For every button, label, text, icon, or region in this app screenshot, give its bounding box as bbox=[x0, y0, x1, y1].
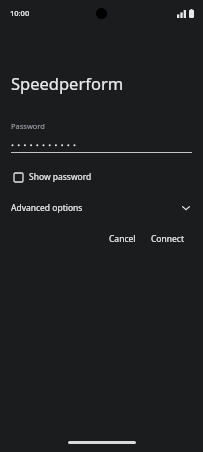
button[interactable]: Cancel bbox=[103, 229, 142, 249]
staticText: Password bbox=[11, 121, 45, 131]
staticText: Connect bbox=[151, 233, 184, 245]
button[interactable]: Advanced options bbox=[11, 198, 192, 218]
staticText: Cancel bbox=[109, 233, 136, 245]
other: Expand advanced options bbox=[180, 202, 192, 214]
button[interactable] bbox=[11, 138, 192, 152]
button[interactable]: Show password bbox=[11, 168, 192, 186]
staticText: Speedperform bbox=[11, 72, 124, 94]
staticText: Advanced options bbox=[11, 202, 83, 214]
staticText: 10:00 bbox=[10, 8, 30, 18]
staticText: Show password bbox=[29, 171, 92, 183]
button[interactable]: Connect bbox=[145, 229, 190, 249]
